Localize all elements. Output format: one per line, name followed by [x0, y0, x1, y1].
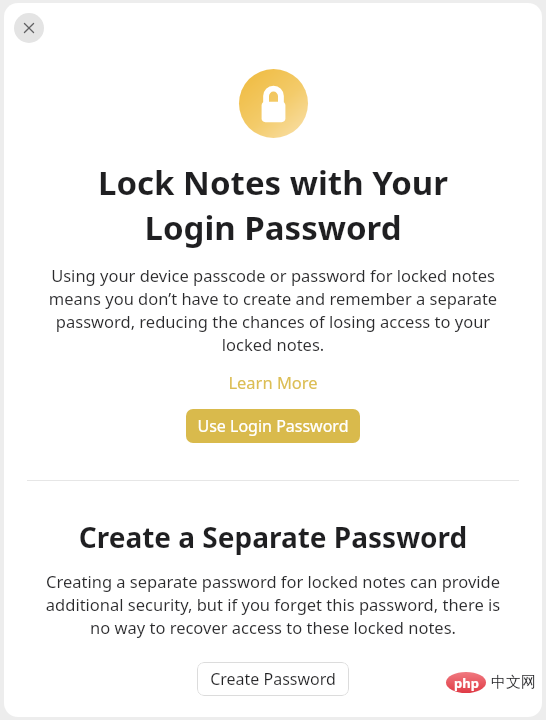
staticText: 中文网 — [491, 673, 536, 692]
button[interactable]: Create Password — [197, 662, 349, 696]
staticText: Login Password — [4, 205, 542, 250]
button[interactable]: Use Login Password — [186, 409, 360, 443]
button[interactable]: Close — [14, 13, 44, 43]
staticText: Creating a separate password for locked … — [44, 570, 502, 639]
staticText: Learn More — [10, 371, 536, 393]
button[interactable]: Learn More — [4, 369, 542, 395]
staticText: Create Password — [197, 668, 349, 690]
staticText: Using your device passcode or password f… — [46, 264, 500, 356]
staticText: Lock Notes with Your — [4, 160, 542, 205]
staticText: php — [454, 674, 479, 692]
staticText: Create a Separate Password — [4, 518, 542, 556]
staticText: Use Login Password — [186, 415, 360, 437]
